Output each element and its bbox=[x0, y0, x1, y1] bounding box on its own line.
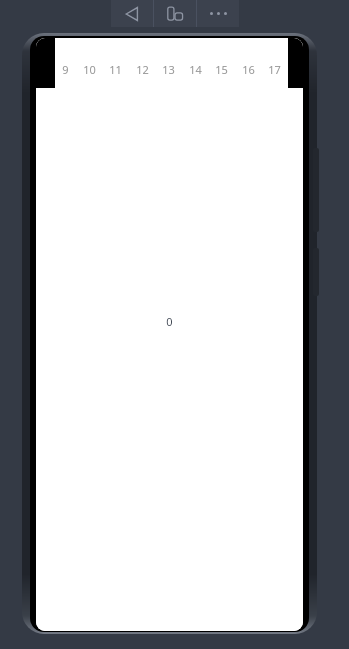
staticText: 16 bbox=[242, 62, 255, 77]
staticText: 14 bbox=[189, 62, 202, 77]
staticText: 13 bbox=[162, 62, 175, 77]
staticText: 11 bbox=[109, 62, 122, 77]
staticText: 17 bbox=[268, 62, 281, 77]
button[interactable]: More options bbox=[197, 0, 239, 27]
staticText: 15 bbox=[215, 62, 228, 77]
button[interactable]: Back bbox=[111, 0, 153, 27]
staticText: 12 bbox=[136, 62, 149, 77]
staticText: 0 bbox=[166, 314, 173, 329]
staticText: 9 bbox=[62, 62, 69, 77]
staticText: 10 bbox=[83, 62, 96, 77]
button[interactable]: Rotate bbox=[154, 0, 196, 27]
